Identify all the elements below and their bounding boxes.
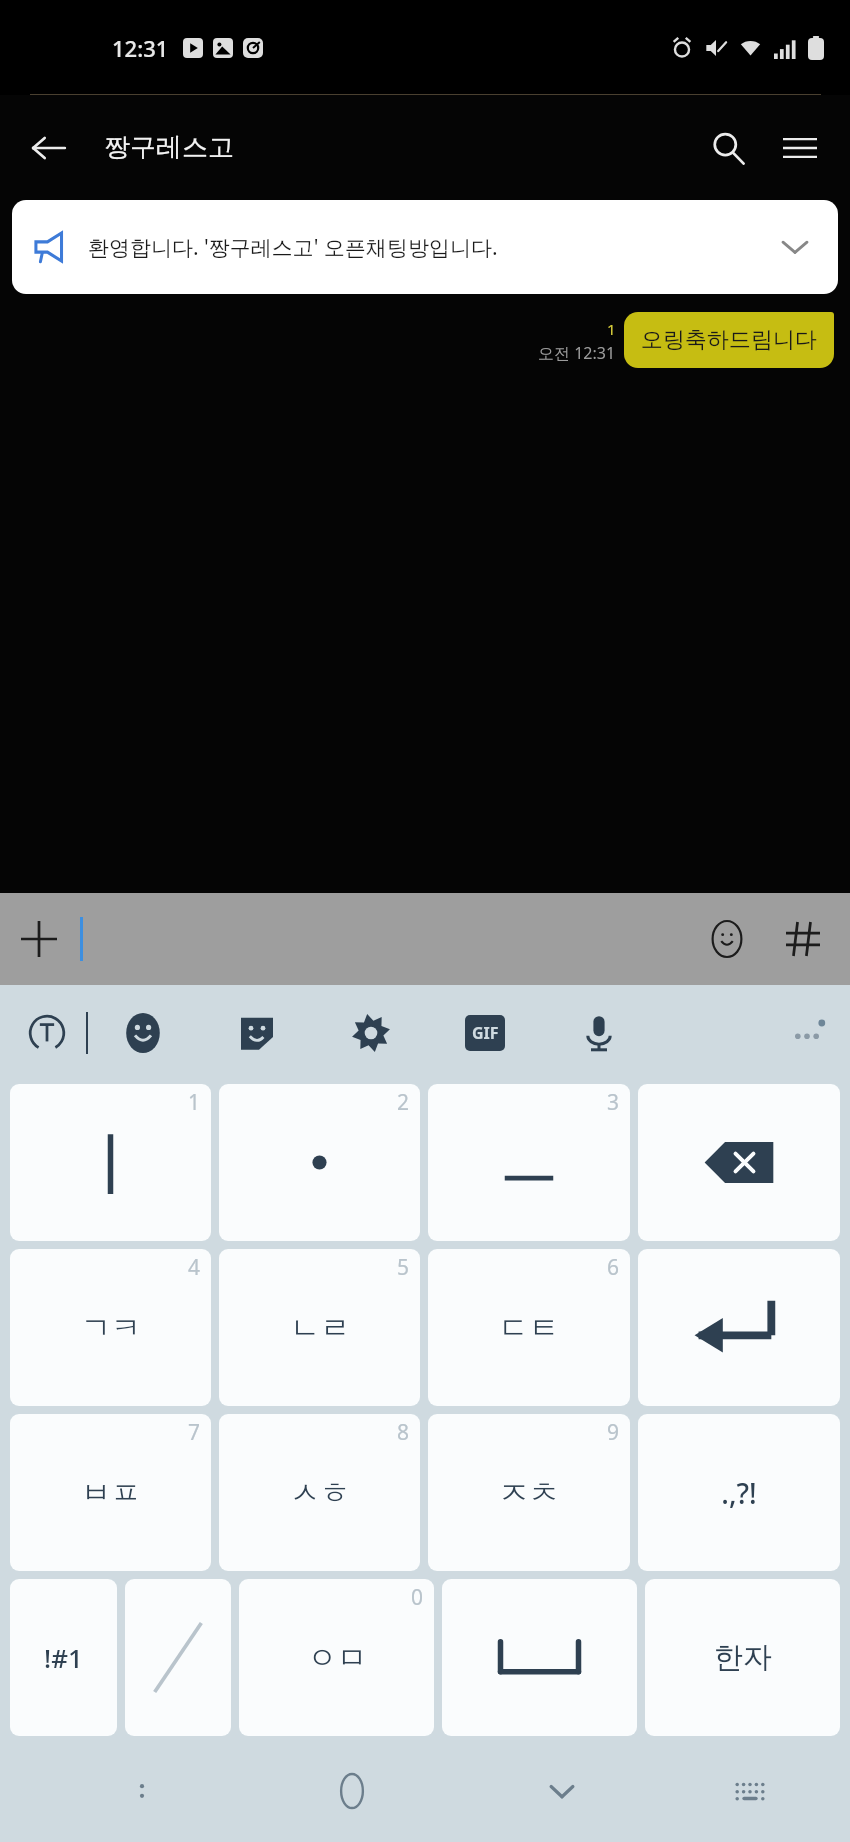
button[interactable]: ㄴㄹ (219, 1249, 420, 1406)
staticText: .,?! (721, 1474, 757, 1512)
button[interactable]: Voice input (568, 1002, 630, 1064)
staticText: 짱구레스고 (104, 131, 234, 164)
staticText: 한자 (714, 1639, 772, 1676)
button[interactable]: .,?! (638, 1414, 840, 1571)
button[interactable] (638, 1249, 840, 1406)
staticText: 12:31 (112, 33, 169, 63)
staticText: 1 (188, 1088, 201, 1117)
button[interactable] (125, 1579, 231, 1736)
staticText: 6 (607, 1253, 620, 1282)
button[interactable]: 1 (10, 1084, 211, 1241)
button[interactable]: Add attachment (10, 910, 68, 968)
button[interactable]: GIF (454, 1002, 516, 1064)
staticText: 1 (607, 319, 616, 339)
staticText: 환영합니다. '짱구레스고' 오픈채팅방입니다. (88, 233, 498, 262)
button[interactable]: Menu (768, 116, 832, 180)
button[interactable]: Translate (16, 1002, 78, 1064)
button[interactable]: Emoticon (698, 910, 756, 968)
staticText: ㅈㅊ (499, 1474, 559, 1512)
button[interactable] (638, 1084, 840, 1241)
button[interactable]: ㄱㅋ (10, 1249, 211, 1406)
button[interactable]: Stickers (226, 1002, 288, 1064)
staticText: ㅂㅍ (81, 1474, 141, 1512)
staticText: ㄷㅌ (499, 1309, 559, 1347)
staticText: 오링축하드림니다 (641, 326, 817, 354)
staticText: ㅅㅎ (290, 1474, 350, 1512)
button[interactable]: ㅇㅁ (239, 1579, 434, 1736)
staticText: 2 (397, 1088, 410, 1117)
button[interactable]: !#1 (10, 1579, 117, 1736)
button[interactable]: 환영합니다. '짱구레스고' 오픈채팅방입니다. (12, 200, 838, 294)
button[interactable] (442, 1579, 637, 1736)
staticText: 7 (188, 1418, 201, 1447)
staticText: 9 (607, 1418, 620, 1447)
button[interactable]: 3 (428, 1084, 630, 1241)
button[interactable]: Recent apps (107, 1756, 177, 1826)
button[interactable]: 오링축하드림니다 (624, 312, 834, 368)
button[interactable]: Hashtag (774, 910, 832, 968)
button[interactable]: ㄷㅌ (428, 1249, 630, 1406)
button[interactable]: Hide keyboard (527, 1756, 597, 1826)
button[interactable]: 2 (219, 1084, 420, 1241)
staticText: ㄱㅋ (81, 1309, 141, 1347)
staticText: ㄴㄹ (290, 1309, 350, 1347)
staticText: !#1 (44, 1640, 83, 1675)
staticText: 4 (188, 1253, 201, 1282)
staticText: 0 (411, 1583, 424, 1612)
button[interactable]: ㅅㅎ (219, 1414, 420, 1571)
button[interactable]: Search (696, 116, 760, 180)
button[interactable]: More options (778, 1002, 840, 1064)
staticText: 3 (607, 1088, 620, 1117)
button[interactable]: Settings (340, 1002, 402, 1064)
button[interactable]: Change keyboard (715, 1756, 785, 1826)
staticText: ㅇㅁ (307, 1639, 367, 1677)
button[interactable]: ㅈㅊ (428, 1414, 630, 1571)
button[interactable]: Back (18, 117, 80, 179)
staticText: 5 (397, 1253, 410, 1282)
button[interactable]: Emoji (112, 1002, 174, 1064)
button[interactable]: Home (317, 1756, 387, 1826)
button[interactable]: ㅂㅍ (10, 1414, 211, 1571)
button[interactable]: 한자 (645, 1579, 840, 1736)
staticText: 8 (397, 1418, 410, 1447)
staticText: GIF (472, 1022, 499, 1044)
button[interactable]: Expand notice (766, 218, 824, 276)
staticText: 오전 12:31 (538, 342, 616, 364)
